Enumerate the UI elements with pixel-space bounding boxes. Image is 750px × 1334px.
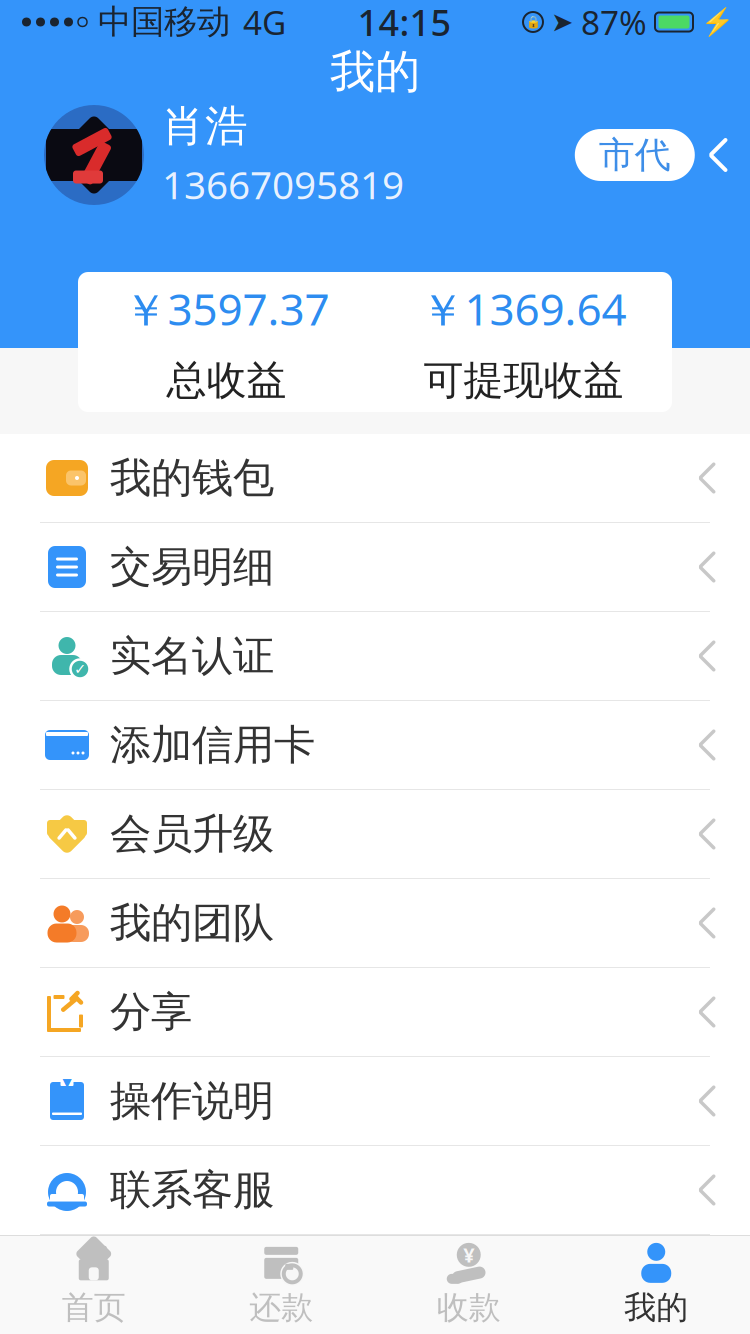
staticText: 总收益: [166, 356, 286, 405]
staticText: ⚡: [701, 7, 734, 37]
staticText: 分享: [110, 987, 192, 1037]
staticText: ￥1369.64: [420, 279, 626, 338]
button[interactable]: 首页: [0, 1235, 187, 1334]
staticText: 中国移动: [98, 1, 230, 42]
staticText: 首页: [62, 1288, 126, 1327]
button[interactable]: 交易明细: [0, 523, 750, 612]
staticText: ¥: [463, 1242, 474, 1268]
staticText: 联系客服: [110, 1165, 274, 1215]
button[interactable]: 我的: [562, 1235, 750, 1334]
button[interactable]: ¥: [375, 1235, 562, 1334]
staticText: 市代: [599, 133, 671, 177]
staticText: 4G: [243, 0, 286, 44]
staticText: ▼: [62, 1076, 71, 1089]
staticText: 我的团队: [110, 898, 274, 948]
staticText: 我的: [330, 44, 420, 100]
button[interactable]: ▼: [0, 1057, 750, 1146]
staticText: ➤: [551, 7, 573, 37]
staticText: 还款: [249, 1288, 313, 1327]
button[interactable]: ✓: [0, 612, 750, 701]
button[interactable]: 我的团队: [0, 879, 750, 968]
staticText: 收款: [437, 1288, 501, 1327]
staticText: ✓: [74, 661, 86, 677]
button[interactable]: 分享: [0, 968, 750, 1057]
staticText: 🔒: [525, 15, 540, 29]
staticText: 我的钱包: [110, 453, 274, 503]
button[interactable]: 我的钱包: [0, 434, 750, 523]
staticText: 87%: [581, 0, 647, 44]
staticText: 会员升级: [110, 809, 274, 859]
button[interactable]: 会员升级: [0, 790, 750, 879]
button[interactable]: 肖浩: [0, 100, 750, 210]
button[interactable]: ￥1369.64: [375, 279, 672, 405]
staticText: 操作说明: [110, 1076, 274, 1126]
staticText: 添加信用卡: [110, 720, 315, 770]
staticText: ￥3597.37: [123, 279, 329, 338]
staticText: 实名认证: [110, 631, 274, 681]
staticText: 我的: [624, 1288, 688, 1327]
staticText: 13667095819: [162, 158, 404, 210]
staticText: 交易明细: [110, 542, 274, 592]
staticText: 可提现收益: [423, 356, 623, 405]
button[interactable]: 添加信用卡: [0, 701, 750, 790]
staticText: 肖浩: [162, 100, 248, 152]
staticText: 14:15: [357, 0, 451, 46]
button[interactable]: 联系客服: [0, 1146, 750, 1235]
button[interactable]: ￥3597.37: [78, 279, 375, 405]
button[interactable]: 还款: [187, 1235, 375, 1334]
